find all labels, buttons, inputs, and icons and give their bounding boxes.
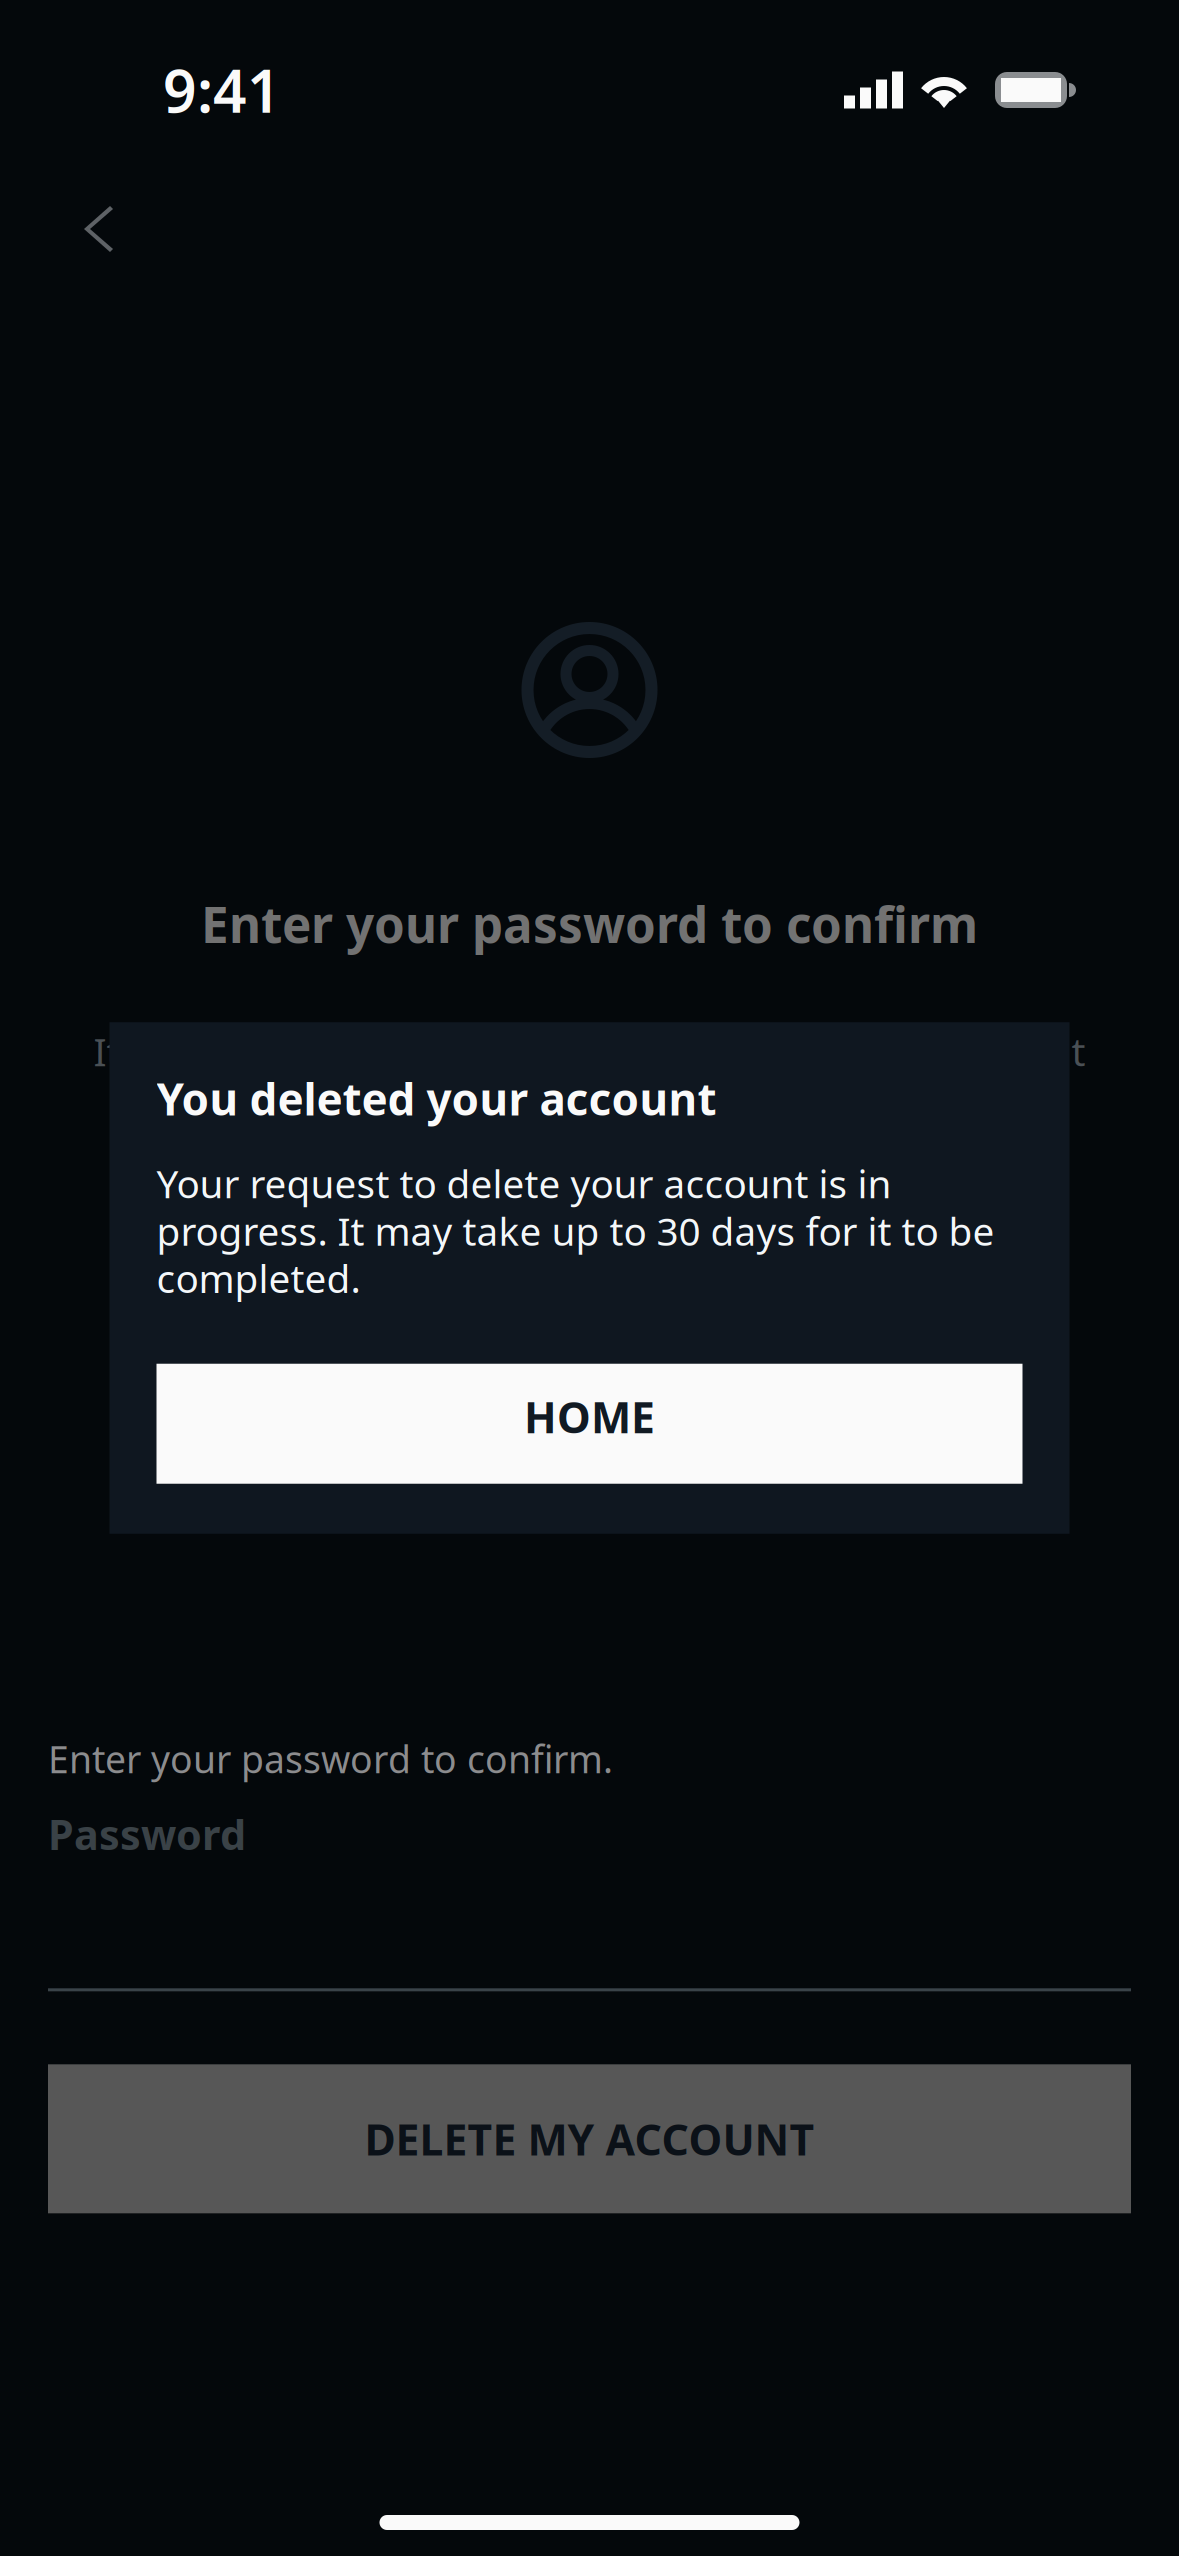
staticText: HOME	[524, 1388, 655, 1445]
button[interactable]: HOME	[156, 1364, 1022, 1484]
staticText: Enter your password to confirm	[201, 891, 978, 956]
staticText: Password	[48, 1806, 246, 1861]
staticText: You deleted your account	[156, 1069, 716, 1128]
staticText: Enter your password to confirm.	[48, 1734, 613, 1783]
staticText: 9:41	[163, 51, 281, 129]
button[interactable]: DELETE MY ACCOUNT	[48, 2064, 1131, 2213]
button[interactable]: Back	[0, 112, 153, 282]
staticText: DELETE MY ACCOUNT	[364, 2110, 814, 2167]
staticText: It may take up to 30 days for us to dele…	[93, 1025, 1085, 1077]
staticText: Your request to delete your account is i…	[156, 1158, 994, 1304]
